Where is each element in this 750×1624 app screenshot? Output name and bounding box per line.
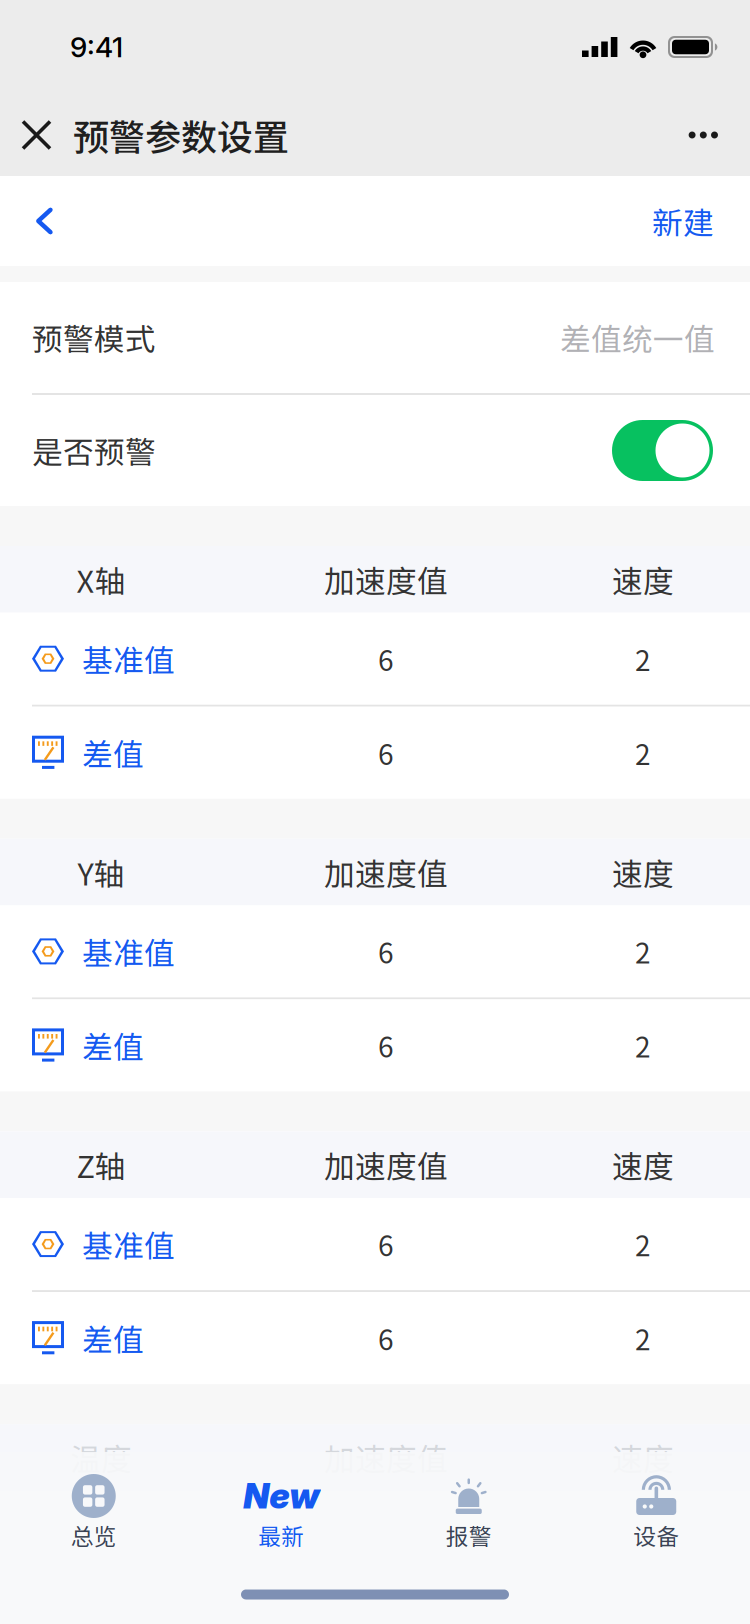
staticText: 2: [635, 732, 651, 773]
staticText: 最新: [258, 1519, 304, 1551]
button[interactable]: 新建: [652, 176, 750, 266]
staticText: 6: [378, 1025, 394, 1066]
staticText: 差值: [82, 1023, 144, 1068]
staticText: 设备: [633, 1519, 679, 1551]
button[interactable]: 总览: [0, 1474, 187, 1553]
button[interactable]: 返回: [0, 176, 53, 266]
button[interactable]: 差值: [0, 999, 750, 1091]
staticText: Z轴: [76, 1142, 125, 1187]
staticText: Y轴: [77, 850, 124, 894]
staticText: 预警参数设置: [73, 109, 289, 161]
staticText: 温度: [70, 1435, 132, 1480]
staticText: 6: [378, 732, 394, 773]
staticText: 2: [635, 1025, 651, 1066]
staticText: 差值: [82, 1316, 144, 1360]
button[interactable]: 是否预警: [612, 420, 713, 481]
staticText: 速度: [612, 850, 674, 894]
button[interactable]: New: [187, 1474, 375, 1553]
staticText: 差值: [82, 730, 144, 775]
button[interactable]: 差值: [0, 1292, 750, 1384]
staticText: 6: [378, 1224, 394, 1264]
staticText: 加速度值: [324, 1435, 448, 1480]
staticText: 差值统一值: [560, 315, 715, 360]
button[interactable]: 设备: [562, 1474, 750, 1553]
staticText: 是否预警: [32, 428, 156, 473]
staticText: 6: [378, 638, 394, 679]
button[interactable]: 预警模式: [0, 282, 750, 393]
staticText: 6: [378, 931, 394, 972]
staticText: 2: [635, 1318, 651, 1358]
staticText: 报警: [446, 1519, 492, 1551]
staticText: X轴: [76, 557, 125, 601]
button[interactable]: 基准值: [0, 1198, 750, 1290]
staticText: 加速度值: [324, 557, 448, 601]
staticText: 基准值: [82, 929, 175, 974]
staticText: 速度: [612, 557, 674, 601]
button[interactable]: 关闭: [0, 94, 73, 176]
staticText: 速度: [612, 1435, 674, 1480]
staticText: 2: [635, 638, 651, 679]
staticText: 新建: [652, 199, 714, 243]
staticText: 总览: [71, 1519, 117, 1551]
staticText: 2: [635, 931, 651, 972]
staticText: 基准值: [82, 636, 175, 681]
staticText: 6: [378, 1318, 394, 1358]
button[interactable]: 基准值: [0, 613, 750, 705]
staticText: 加速度值: [324, 850, 448, 894]
button[interactable]: 报警: [375, 1474, 562, 1553]
staticText: 基准值: [82, 1222, 175, 1266]
staticText: 2: [635, 1224, 651, 1264]
staticText: 预警模式: [32, 315, 156, 360]
button[interactable]: 更多: [689, 94, 750, 176]
staticText: 9:41: [70, 30, 123, 64]
staticText: 加速度值: [324, 1142, 448, 1187]
button[interactable]: 差值: [0, 707, 750, 799]
staticText: New: [243, 1475, 319, 1517]
button[interactable]: 基准值: [0, 905, 750, 997]
staticText: 速度: [612, 1142, 674, 1187]
